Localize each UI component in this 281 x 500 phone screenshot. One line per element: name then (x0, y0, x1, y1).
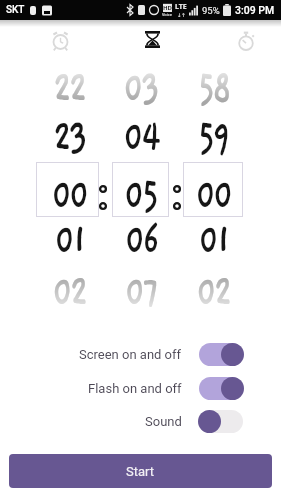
staticText: Flash on and off (88, 381, 182, 396)
staticText: 01 (198, 215, 228, 265)
button[interactable] (236, 31, 256, 52)
staticText: 04 (123, 112, 158, 162)
staticText: 01 (54, 215, 84, 265)
staticText: 06 (125, 215, 157, 265)
staticText: 95% (202, 5, 220, 16)
staticText: HD (163, 4, 172, 12)
staticText: Voice (162, 12, 172, 17)
staticText: Screen on and off (79, 347, 182, 362)
button[interactable] (198, 409, 244, 433)
staticText: Sound (145, 414, 182, 429)
staticText: SKT (6, 4, 25, 16)
button[interactable] (112, 162, 169, 217)
staticText: 58 (198, 63, 229, 113)
staticText: 23 (53, 112, 85, 162)
staticText: Start (126, 464, 155, 479)
button[interactable] (36, 162, 99, 217)
staticText: LTE (175, 2, 187, 12)
staticText: ↓↑ (177, 12, 186, 18)
staticText: 00 (195, 170, 231, 220)
staticText: 07 (125, 267, 157, 317)
button[interactable] (145, 31, 160, 48)
staticText: 3:09 PM (235, 4, 275, 16)
button[interactable]: Start (9, 454, 272, 488)
staticText: 02 (52, 267, 86, 317)
button[interactable] (198, 376, 244, 400)
button[interactable] (198, 342, 244, 366)
staticText: 02 (196, 267, 230, 317)
staticText: 03 (123, 63, 158, 113)
staticText: 05 (124, 170, 157, 220)
staticText: 00 (51, 170, 87, 220)
button[interactable] (50, 31, 71, 52)
button[interactable] (183, 162, 243, 217)
staticText: 59 (198, 112, 228, 162)
staticText: 22 (53, 63, 85, 113)
